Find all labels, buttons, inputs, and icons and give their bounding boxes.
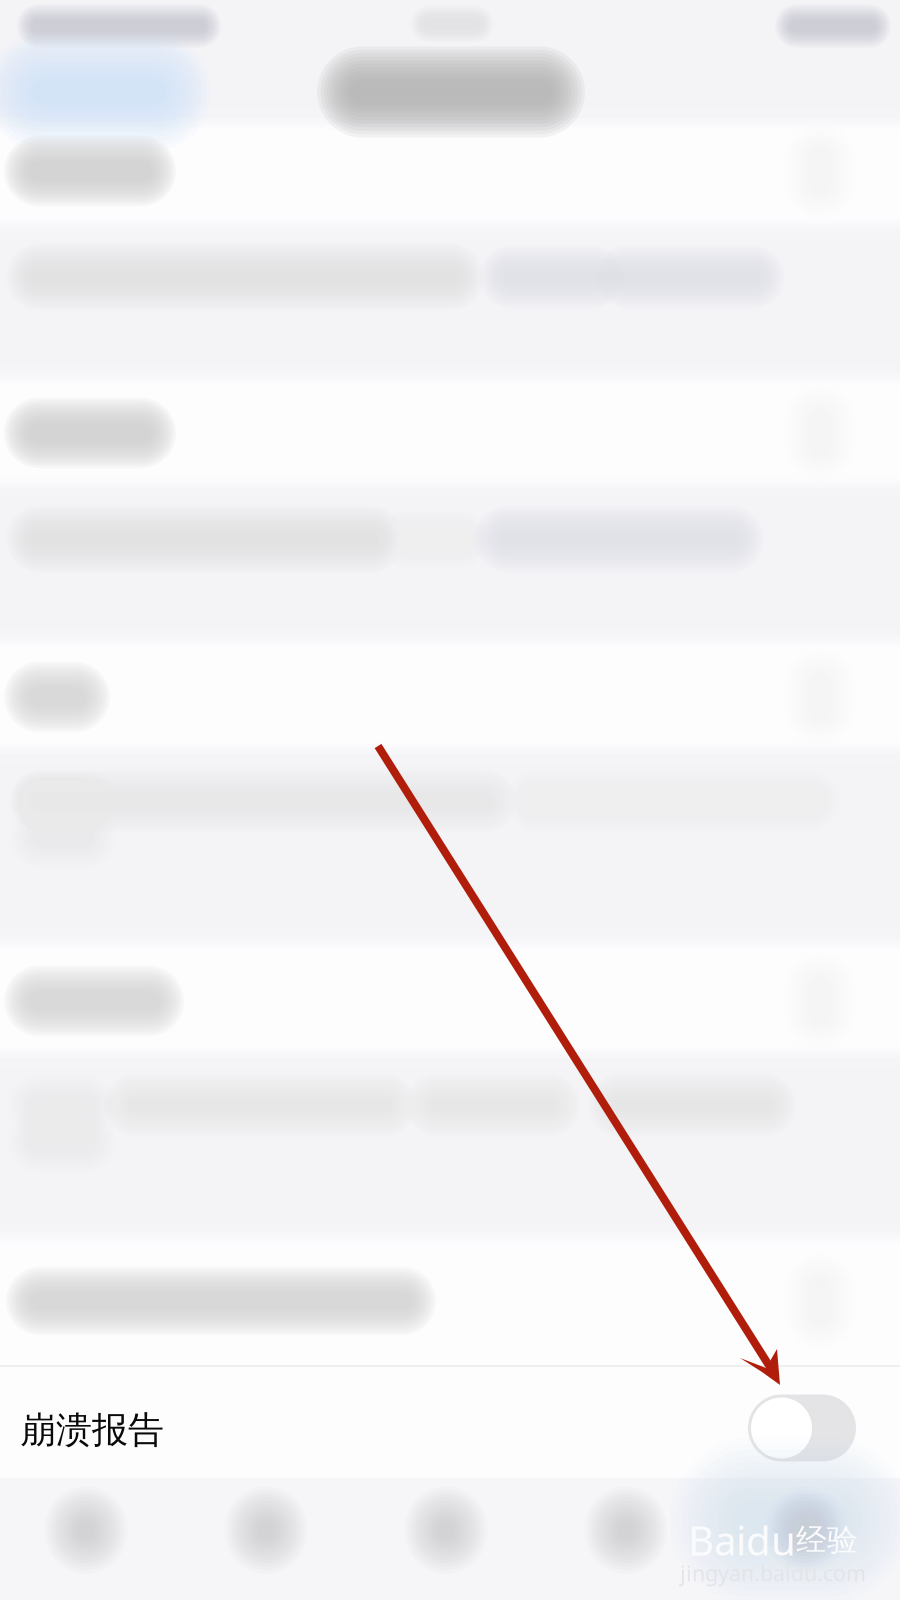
- staticText: jingyan.baidu.com: [680, 1559, 866, 1587]
- staticText: 崩溃报告: [20, 1408, 164, 1452]
- button[interactable]: Tab: [177, 1478, 355, 1599]
- button[interactable]: 崩溃报告: [0, 1365, 900, 1479]
- button[interactable]: Tab: [537, 1478, 715, 1599]
- button[interactable]: Tab: [357, 1478, 535, 1599]
- button[interactable]: Tab: [0, 1478, 175, 1599]
- button[interactable]: Tab: [717, 1478, 895, 1599]
- staticText: 经验: [796, 1521, 858, 1559]
- staticText: Baidu: [688, 1513, 796, 1566]
